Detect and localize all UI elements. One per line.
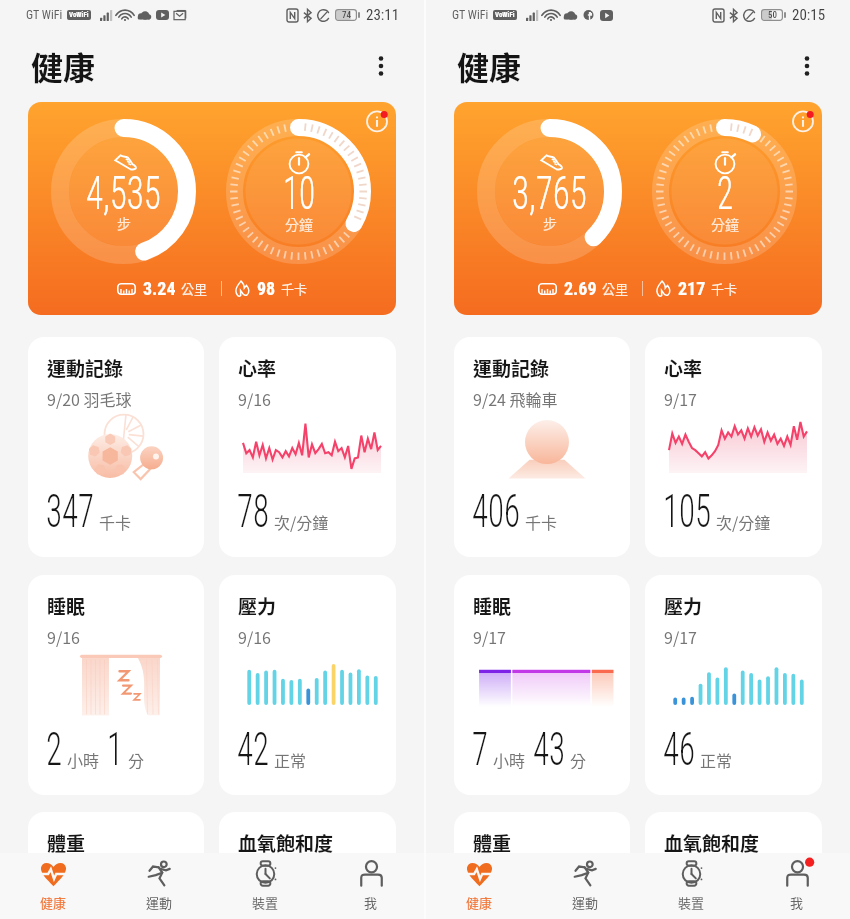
button[interactable]: 壓力 bbox=[219, 575, 396, 795]
button[interactable]: 睡眠 bbox=[28, 575, 204, 795]
staticText: 次/分鐘 bbox=[274, 510, 329, 533]
staticText: 2.69 bbox=[564, 278, 597, 299]
button[interactable]: 健康 bbox=[0, 853, 106, 919]
staticText: VoWiFi bbox=[69, 11, 89, 19]
button[interactable]: 血氧飽和度 bbox=[219, 812, 396, 919]
button[interactable]: More options bbox=[360, 45, 402, 87]
staticText: 98 bbox=[257, 278, 276, 299]
staticText: GT WiFi bbox=[452, 8, 489, 22]
button[interactable]: 心率 bbox=[219, 337, 396, 557]
staticText: 小時 bbox=[493, 748, 526, 771]
staticText: 3.24 bbox=[143, 278, 176, 299]
staticText: 42 bbox=[237, 721, 269, 776]
button[interactable]: 心率 bbox=[645, 337, 822, 557]
staticText: 1 bbox=[107, 721, 123, 776]
staticText: 9/24 飛輪車 bbox=[473, 387, 558, 410]
staticText: 睡眠 bbox=[47, 592, 86, 620]
staticText: 46 bbox=[663, 721, 695, 776]
staticText: 正常 bbox=[700, 748, 733, 771]
staticText: 我 bbox=[790, 893, 804, 912]
staticText: 健康 bbox=[40, 893, 67, 912]
staticText: 9/16 bbox=[47, 625, 80, 648]
button[interactable]: 壓力 bbox=[645, 575, 822, 795]
staticText: 分 bbox=[128, 748, 145, 771]
staticText: 千卡 bbox=[525, 510, 558, 533]
staticText: GT WiFi bbox=[26, 8, 63, 22]
staticText: 運動 bbox=[146, 893, 173, 912]
button[interactable]: 4,535 bbox=[28, 102, 396, 315]
button[interactable]: 我 bbox=[318, 853, 424, 919]
staticText: 9/17 bbox=[664, 625, 697, 648]
staticText: 裝置 bbox=[678, 893, 705, 912]
button[interactable]: 運動 bbox=[106, 853, 212, 919]
staticText: 分鐘 bbox=[711, 214, 739, 234]
staticText: 運動 bbox=[572, 893, 599, 912]
staticText: 運動記錄 bbox=[473, 354, 550, 382]
staticText: 我 bbox=[364, 893, 378, 912]
staticText: 健康 bbox=[457, 43, 522, 89]
staticText: 心率 bbox=[664, 354, 703, 382]
button[interactable]: 我 bbox=[744, 853, 850, 919]
staticText: 2 bbox=[717, 166, 734, 220]
button[interactable]: 運動記錄 bbox=[454, 337, 630, 557]
button[interactable]: 運動記錄 bbox=[28, 337, 204, 557]
staticText: 7 bbox=[472, 721, 488, 776]
staticText: 105 bbox=[663, 483, 711, 538]
staticText: 血氧飽和度 bbox=[238, 829, 334, 857]
staticText: 體重 bbox=[473, 829, 512, 857]
staticText: 分 bbox=[570, 748, 587, 771]
staticText: 3,765 bbox=[512, 166, 587, 220]
staticText: 2 bbox=[46, 721, 62, 776]
staticText: 正常 bbox=[274, 748, 307, 771]
staticText: 壓力 bbox=[664, 592, 703, 620]
staticText: 血氧飽和度 bbox=[664, 829, 760, 857]
button[interactable]: Info bbox=[788, 106, 818, 136]
staticText: 公里 bbox=[181, 279, 208, 298]
staticText: 運動記錄 bbox=[47, 354, 124, 382]
staticText: 4,535 bbox=[86, 166, 161, 220]
button[interactable]: 裝置 bbox=[638, 853, 744, 919]
staticText: 裝置 bbox=[252, 893, 279, 912]
button[interactable]: 3,765 bbox=[454, 102, 822, 315]
staticText: 23:11 bbox=[366, 6, 400, 24]
staticText: 9/17 bbox=[664, 387, 697, 410]
staticText: 步 bbox=[543, 213, 557, 233]
button[interactable]: More options bbox=[786, 45, 828, 87]
staticText: 78 bbox=[237, 483, 269, 538]
staticText: 千卡 bbox=[99, 510, 132, 533]
staticText: 健康 bbox=[31, 43, 96, 89]
staticText: 千卡 bbox=[711, 279, 738, 298]
staticText: 體重 bbox=[47, 829, 86, 857]
staticText: 千卡 bbox=[281, 279, 308, 298]
button[interactable]: 睡眠 bbox=[454, 575, 630, 795]
button[interactable]: 運動 bbox=[532, 853, 638, 919]
staticText: 43 bbox=[533, 721, 565, 776]
button[interactable]: 裝置 bbox=[212, 853, 318, 919]
staticText: 74 bbox=[342, 10, 351, 21]
staticText: 壓力 bbox=[238, 592, 277, 620]
button[interactable]: 血氧飽和度 bbox=[645, 812, 822, 919]
staticText: 分鐘 bbox=[285, 214, 313, 234]
staticText: 50 bbox=[768, 10, 777, 21]
staticText: 9/16 bbox=[238, 625, 271, 648]
staticText: 公里 bbox=[602, 279, 629, 298]
staticText: 10 bbox=[283, 166, 315, 220]
staticText: 睡眠 bbox=[473, 592, 512, 620]
staticText: 20:15 bbox=[792, 6, 826, 24]
staticText: VoWiFi bbox=[495, 11, 515, 19]
staticText: 406 bbox=[472, 483, 520, 538]
staticText: 9/16 bbox=[238, 387, 271, 410]
button[interactable]: Info bbox=[362, 106, 392, 136]
staticText: 次/分鐘 bbox=[716, 510, 771, 533]
staticText: 步 bbox=[117, 213, 131, 233]
button[interactable]: 健康 bbox=[426, 853, 532, 919]
button[interactable]: 體重 bbox=[454, 812, 630, 919]
staticText: 9/20 羽毛球 bbox=[47, 387, 132, 410]
staticText: 健康 bbox=[466, 893, 493, 912]
staticText: 347 bbox=[46, 483, 94, 538]
staticText: 9/17 bbox=[473, 625, 506, 648]
staticText: 小時 bbox=[67, 748, 100, 771]
button[interactable]: 體重 bbox=[28, 812, 204, 919]
staticText: 心率 bbox=[238, 354, 277, 382]
staticText: 217 bbox=[678, 278, 706, 299]
